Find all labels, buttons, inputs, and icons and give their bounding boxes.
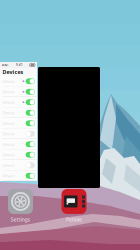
button[interactable]: Device xyxy=(0,76,37,86)
staticText: Devices xyxy=(2,68,23,76)
staticText: Pebble xyxy=(66,216,82,223)
button[interactable]: Device xyxy=(0,118,37,128)
button[interactable]: Device xyxy=(0,139,37,149)
staticText: Device xyxy=(2,163,14,168)
button[interactable]: Device xyxy=(0,107,37,118)
staticText: AT&T xyxy=(2,63,9,67)
staticText: Device xyxy=(2,79,14,84)
staticText: Settings xyxy=(10,216,30,223)
staticText: Device xyxy=(2,100,14,105)
staticText: Device xyxy=(2,89,14,94)
button[interactable]: Device xyxy=(0,128,37,139)
staticText: Device xyxy=(2,142,14,147)
button[interactable]: Device xyxy=(0,149,37,160)
staticText: Device xyxy=(2,152,14,157)
button[interactable]: Device xyxy=(0,160,37,170)
staticText: Device xyxy=(2,173,14,178)
staticText: Device xyxy=(2,110,14,115)
button[interactable]: Device xyxy=(0,86,37,97)
button[interactable]: Device xyxy=(0,97,37,107)
staticText: Device xyxy=(2,121,14,126)
button[interactable]: Device xyxy=(0,170,37,181)
button[interactable]: Settings xyxy=(8,189,33,223)
staticText: Device xyxy=(2,131,14,136)
button[interactable]: Pebble xyxy=(61,189,86,223)
staticText: 9:41 xyxy=(16,63,23,67)
